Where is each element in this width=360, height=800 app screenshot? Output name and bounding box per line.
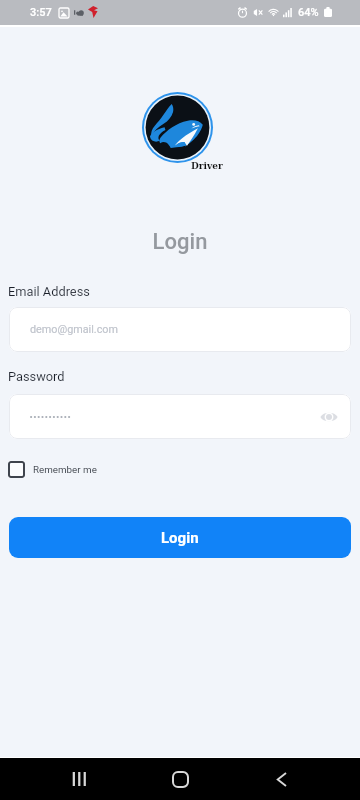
staticText: 64% [298, 6, 319, 19]
staticText: Login [0, 229, 360, 255]
staticText: demo@gmail.com [30, 323, 118, 336]
staticText: Remember me [33, 464, 97, 475]
staticText: Email Address [8, 284, 90, 299]
button[interactable]: Login [9, 517, 351, 558]
button[interactable]: Recent apps [59, 759, 99, 799]
button[interactable]: Show password [317, 405, 341, 429]
button[interactable]: Remember me [8, 461, 97, 478]
button[interactable]: demo@gmail.com [9, 307, 351, 352]
staticText: Login [161, 529, 199, 547]
button[interactable]: Back [261, 759, 301, 799]
staticText: 3:57 [30, 6, 52, 19]
button[interactable]: Home [160, 759, 200, 799]
staticText: Password [8, 369, 65, 384]
staticText: Driver [191, 161, 223, 172]
button[interactable]: Show password [9, 394, 351, 439]
